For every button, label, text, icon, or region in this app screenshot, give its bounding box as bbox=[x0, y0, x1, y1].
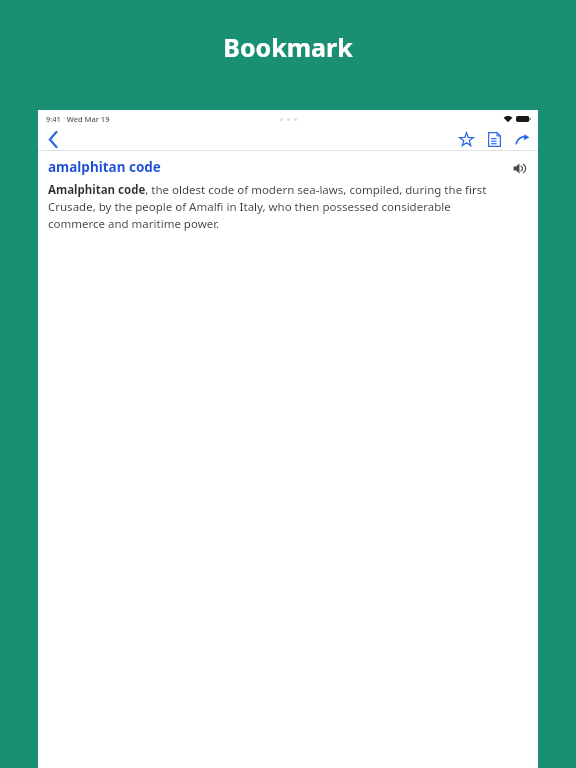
button[interactable]: Pronounce bbox=[510, 158, 530, 178]
button[interactable]: Document bbox=[484, 129, 504, 149]
staticText: 9:41 Wed Mar 19 bbox=[46, 114, 110, 124]
staticText: amalphitan code bbox=[48, 158, 161, 176]
button[interactable]: Share bbox=[512, 129, 532, 149]
button[interactable]: amalphitan code bbox=[48, 158, 161, 176]
staticText: Bookmark bbox=[223, 30, 353, 64]
button[interactable]: Back bbox=[42, 128, 64, 150]
button[interactable]: Favorite bbox=[456, 129, 476, 149]
staticText: Amalphitan code, the oldest code of mode… bbox=[48, 182, 508, 232]
